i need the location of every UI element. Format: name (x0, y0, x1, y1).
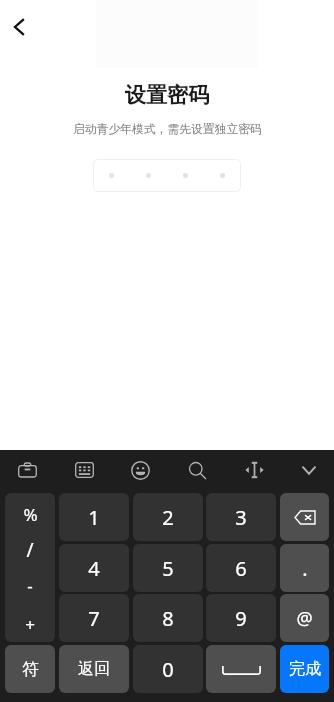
staticText: 2 (162, 504, 174, 531)
button[interactable]: Backspace (280, 493, 329, 541)
staticText: 0 (162, 656, 174, 683)
button[interactable]: 4 (59, 544, 129, 592)
button[interactable]: 8 (133, 594, 203, 642)
staticText: + (25, 613, 35, 636)
staticText: 9 (235, 605, 247, 632)
staticText: 返回 (78, 659, 110, 679)
button[interactable]: 7 (59, 594, 129, 642)
button[interactable]: 1 (59, 493, 129, 541)
button[interactable]: 返回 (59, 645, 129, 693)
button[interactable]: 0 (133, 645, 203, 693)
staticText: 符 (22, 659, 39, 680)
button[interactable]: 2 (133, 493, 203, 541)
staticText: 完成 (289, 659, 321, 679)
button[interactable]: Hide keyboard (292, 453, 326, 487)
staticText: 8 (162, 605, 174, 632)
button[interactable]: 完成 (280, 645, 329, 693)
staticText: 设置密码 (125, 82, 209, 108)
button[interactable]: Emoji (123, 453, 157, 487)
button[interactable]: Symbols (5, 493, 55, 642)
staticText: % (23, 503, 38, 526)
button[interactable]: Tools (10, 453, 44, 487)
button[interactable]: Space (206, 645, 276, 693)
staticText: 启动青少年模式，需先设置独立密码 (73, 122, 262, 137)
button[interactable]: 3 (206, 493, 276, 541)
button[interactable]: 9 (206, 594, 276, 642)
button[interactable]: 符 (5, 645, 55, 693)
button[interactable]: Move cursor (237, 453, 271, 487)
button[interactable]: Search (180, 453, 214, 487)
button[interactable]: Back (3, 11, 35, 43)
button[interactable]: . (280, 544, 329, 592)
button[interactable]: 5 (133, 544, 203, 592)
staticText: / (26, 537, 34, 563)
staticText: . (302, 555, 308, 582)
button[interactable]: Password field (93, 159, 241, 192)
staticText: - (27, 574, 33, 597)
staticText: 1 (88, 504, 100, 531)
button[interactable]: @ (280, 594, 329, 642)
button[interactable]: 6 (206, 544, 276, 592)
staticText: @ (296, 606, 313, 631)
staticText: 7 (88, 605, 100, 632)
staticText: 5 (162, 555, 174, 582)
staticText: 6 (235, 555, 247, 582)
staticText: 4 (88, 555, 100, 582)
staticText: 3 (235, 504, 247, 531)
button[interactable]: Keyboard (67, 453, 101, 487)
